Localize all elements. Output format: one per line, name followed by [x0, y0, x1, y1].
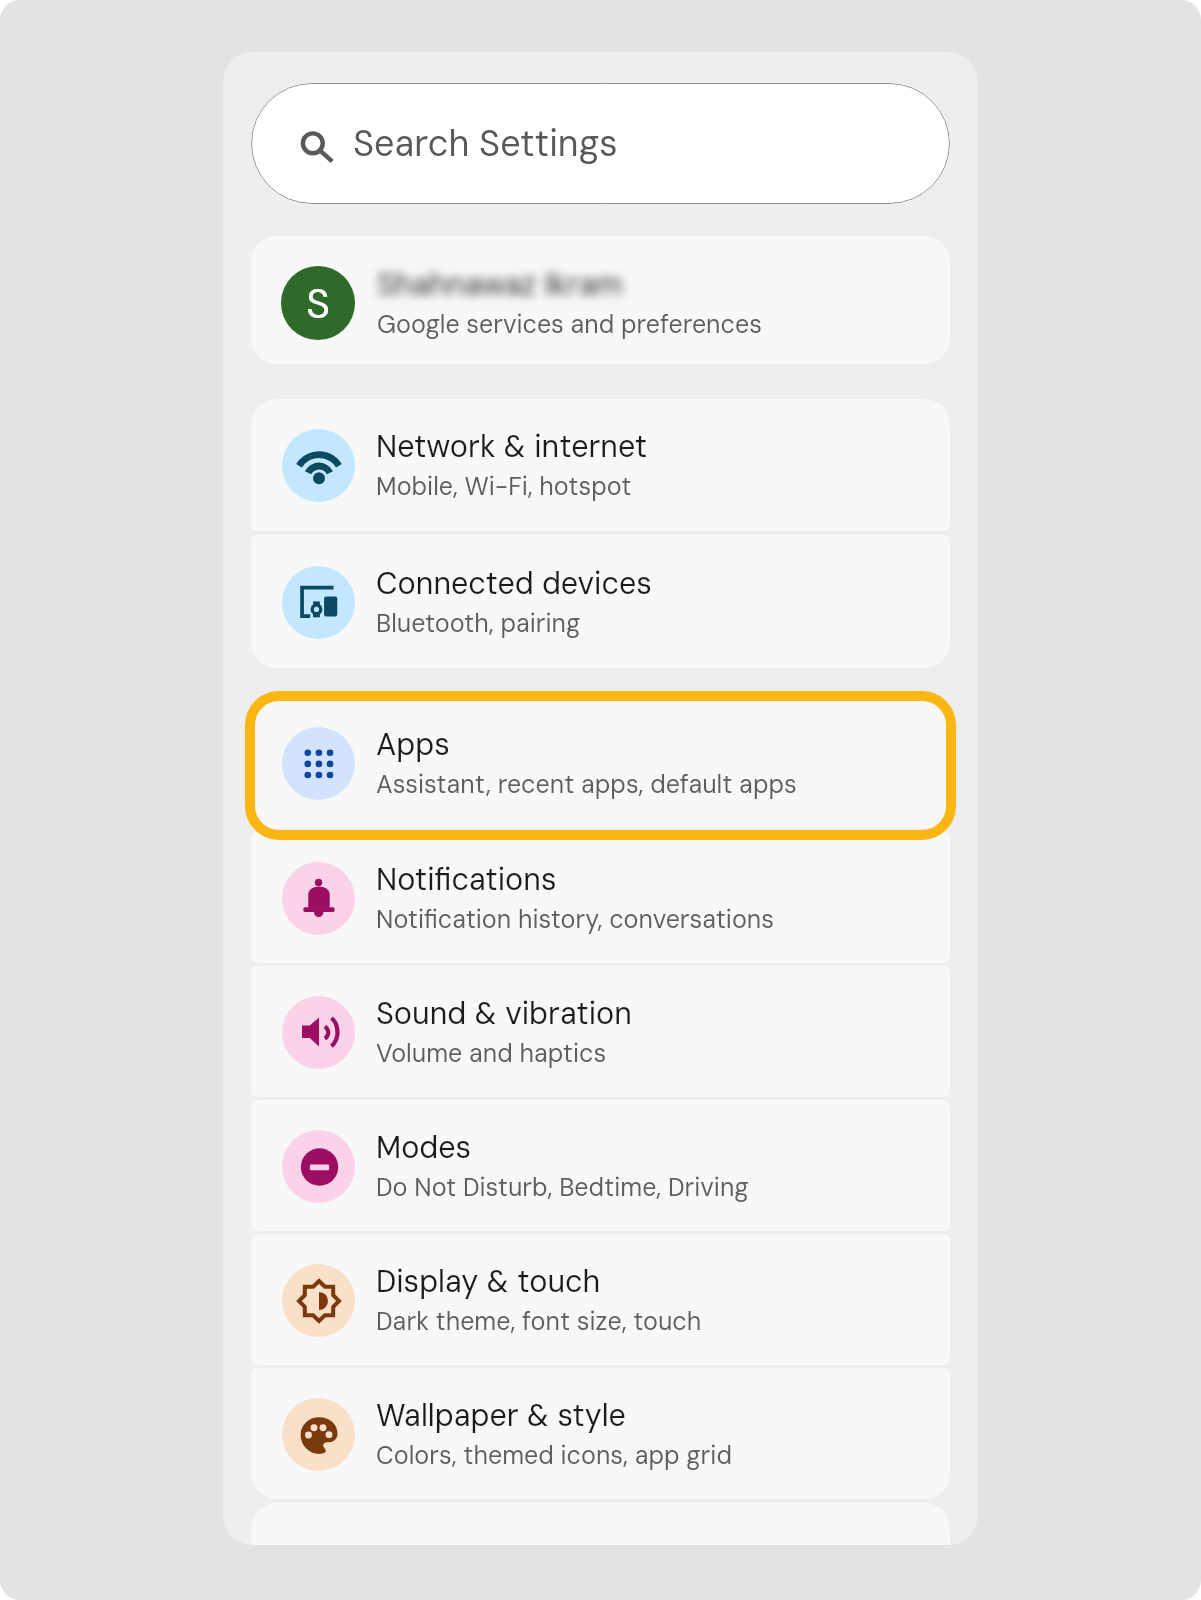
staticText: S — [306, 277, 331, 330]
staticText: Search Settings — [353, 120, 618, 167]
staticText: Dark theme, font size, touch — [376, 1305, 702, 1338]
staticText: Modes — [376, 1128, 472, 1168]
staticText: Volume and haptics — [376, 1037, 607, 1070]
staticText: Assistant, recent apps, default apps — [376, 768, 797, 801]
button[interactable]: Sound & vibration — [251, 966, 950, 1097]
button[interactable]: Connected devices — [251, 535, 950, 668]
staticText: Connected devices — [376, 564, 652, 604]
button[interactable]: Search Settings — [251, 83, 950, 204]
button[interactable]: Notifications — [251, 832, 950, 963]
staticText: Mobile, Wi-Fi, hotspot — [376, 470, 632, 503]
staticText: Notification history, conversations — [376, 903, 774, 936]
button[interactable]: Modes — [251, 1100, 950, 1231]
staticText: Colors, themed icons, app grid — [376, 1439, 732, 1472]
staticText: Network & internet — [376, 427, 648, 467]
button[interactable]: Display & touch — [251, 1234, 950, 1365]
staticText: Do Not Disturb, Bedtime, Driving — [376, 1171, 749, 1204]
staticText: Bluetooth, pairing — [376, 607, 581, 640]
button[interactable]: Apps — [251, 697, 950, 828]
staticText: Shahnawaz Ikram — [377, 265, 623, 305]
button[interactable]: S — [251, 236, 950, 364]
staticText: Apps — [376, 725, 450, 765]
staticText: Display & touch — [376, 1262, 601, 1302]
staticText: Sound & vibration — [376, 994, 632, 1034]
staticText: Notifications — [376, 860, 557, 900]
staticText: Wallpaper & style — [376, 1396, 626, 1436]
button[interactable]: Wallpaper & style — [251, 1368, 950, 1499]
button[interactable]: Network & internet — [251, 399, 950, 531]
staticText: Google services and preferences — [377, 308, 762, 341]
